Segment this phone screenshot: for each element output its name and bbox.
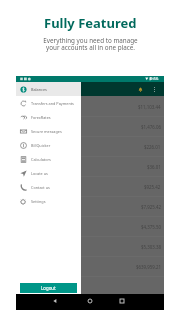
staticText: Secure messages: [31, 129, 62, 134]
staticText: Logout: [41, 285, 56, 291]
button[interactable]: $7,925.42: [16, 197, 164, 217]
staticText: Locate us: [31, 171, 48, 176]
staticText: 9:56: [150, 76, 159, 82]
staticText: $925.42: [144, 184, 161, 190]
staticText: $7,925.42: [141, 204, 161, 210]
button[interactable]: More options: [149, 84, 160, 95]
button[interactable]: Secure messages: [16, 124, 81, 138]
staticText: Calculators: [31, 157, 51, 162]
staticText: Everything you need to manage your accou…: [43, 36, 138, 52]
staticText: Contact us: [31, 185, 50, 190]
staticText: $1,476.06: [141, 124, 161, 130]
button[interactable]: Home: [83, 294, 97, 308]
staticText: Fully Featured: [44, 14, 137, 32]
staticText: $639,959.21: [136, 264, 161, 270]
button[interactable]: Settings: [16, 194, 81, 208]
button[interactable]: Back: [48, 294, 62, 308]
button[interactable]: ForexRates: [16, 110, 81, 124]
button[interactable]: Logout: [20, 283, 77, 293]
button[interactable]: Calculators: [16, 152, 81, 166]
button[interactable]: $1,476.06: [16, 117, 164, 137]
staticText: $36.01: [147, 164, 161, 170]
button[interactable]: Contact us: [16, 180, 81, 194]
staticText: Transfers and Payments: [31, 101, 74, 106]
button[interactable]: $36.01: [16, 157, 164, 177]
staticText: $5,303.38: [141, 244, 161, 250]
button[interactable]: BillQuicker: [16, 138, 81, 152]
button[interactable]: $5,303.38: [16, 237, 164, 257]
staticText: $226.01: [144, 144, 161, 150]
button[interactable]: $11,103.44: [16, 97, 164, 117]
button[interactable]: Transfers and Payments: [16, 96, 81, 110]
staticText: $4,375.50: [141, 224, 161, 230]
button[interactable]: $4,375.50: [16, 217, 164, 237]
button[interactable]: Notifications: [134, 83, 147, 96]
staticText: ForexRates: [31, 115, 51, 120]
staticText: Balances: [31, 87, 47, 92]
button[interactable]: $639,959.21: [16, 257, 164, 277]
button[interactable]: Balances: [16, 82, 81, 96]
staticText: Settings: [31, 199, 46, 204]
button[interactable]: Recents: [115, 294, 129, 308]
button[interactable]: Locate us: [16, 166, 81, 180]
button[interactable]: $226.01: [16, 137, 164, 157]
staticText: $11,103.44: [138, 104, 161, 110]
staticText: BillQuicker: [31, 143, 51, 148]
button[interactable]: $925.42: [16, 177, 164, 197]
